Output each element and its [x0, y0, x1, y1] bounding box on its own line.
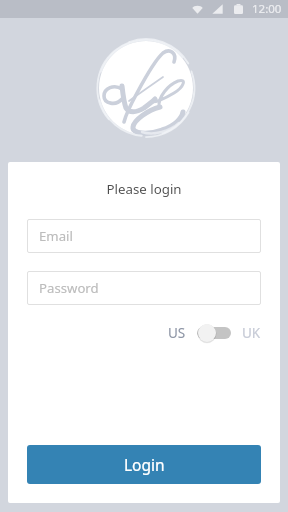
- button[interactable]: UK: [242, 324, 261, 342]
- staticText: UK: [242, 324, 261, 342]
- staticText: Please login: [8, 180, 280, 198]
- staticText: US: [168, 324, 186, 342]
- button[interactable]: Email: [27, 219, 261, 253]
- staticText: Login: [124, 454, 165, 475]
- staticText: Password: [39, 279, 99, 297]
- button[interactable]: US: [168, 324, 186, 342]
- button[interactable]: Switch region US to UK: [197, 323, 231, 343]
- button[interactable]: Password: [27, 271, 261, 305]
- button[interactable]: Login: [27, 445, 261, 484]
- staticText: Email: [39, 227, 73, 245]
- staticText: 12:00: [252, 1, 282, 17]
